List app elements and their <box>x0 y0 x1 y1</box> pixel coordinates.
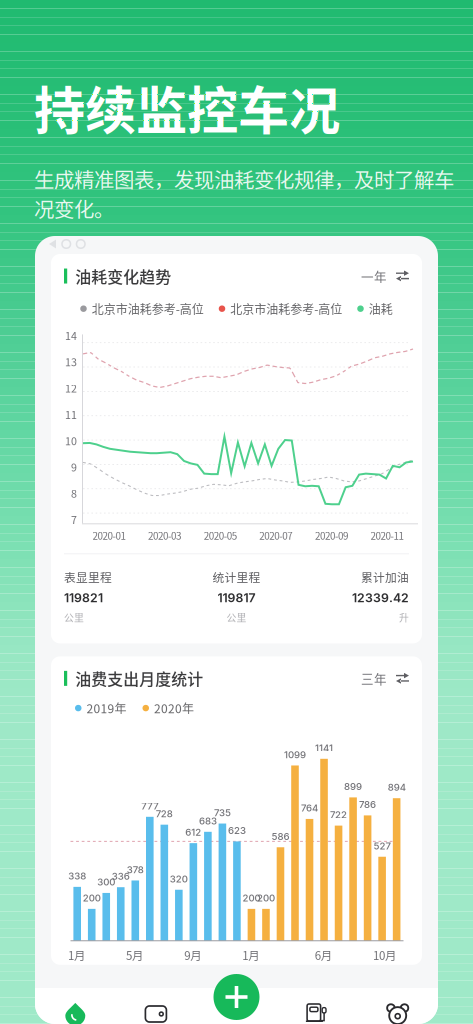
button[interactable]: 油耗 <box>35 988 116 1024</box>
staticText: 表显里程 <box>64 568 112 585</box>
staticText: 899 <box>344 781 362 792</box>
staticText: 9月 <box>184 947 201 963</box>
staticText: 764 <box>301 802 318 814</box>
staticText: 2020-09 <box>315 528 348 543</box>
staticText: 10月 <box>373 947 396 963</box>
staticText: 8 <box>71 485 77 501</box>
staticText: 14 <box>65 328 77 343</box>
staticText: 12339.42 <box>352 590 409 605</box>
button[interactable]: 三年 <box>361 669 409 687</box>
staticText: 2020-07 <box>259 528 292 543</box>
staticText: 119817 <box>217 590 255 605</box>
staticText: 12 <box>65 380 77 396</box>
staticText: 2020-03 <box>148 528 181 543</box>
staticText: 119821 <box>64 590 103 605</box>
staticText: 北京市油耗参考-高位 <box>92 300 204 317</box>
button[interactable]: 我的 <box>357 988 438 1024</box>
staticText: 1141 <box>315 742 333 754</box>
staticText: 13 <box>65 354 77 369</box>
staticText: 200 <box>242 892 260 904</box>
staticText: 5月 <box>126 947 143 963</box>
staticText: 786 <box>359 799 376 810</box>
staticText: 一年 <box>361 267 387 285</box>
staticText: 6月 <box>315 947 332 963</box>
staticText: 油耗 <box>369 300 393 317</box>
staticText: 200 <box>257 892 275 904</box>
staticText: 统计里程 <box>212 568 260 585</box>
staticText: 油费支出月度统计 <box>75 667 203 690</box>
staticText: 持续监控车况 <box>34 70 340 144</box>
staticText: 735 <box>214 807 231 818</box>
staticText: 7 <box>71 512 77 527</box>
staticText: 728 <box>156 808 173 820</box>
staticText: 10 <box>65 433 77 448</box>
staticText: 公里 <box>226 610 246 624</box>
staticText: 336 <box>112 871 130 882</box>
staticText: 2020-11 <box>370 528 403 543</box>
button[interactable]: 添加 <box>213 974 259 1020</box>
staticText: 升 <box>399 610 409 624</box>
staticText: 生成精准图表，发现油耗变化规律，及时了解车 况变化。 <box>34 164 454 223</box>
staticText: 2019年 <box>86 699 126 717</box>
staticText: 612 <box>185 826 201 838</box>
staticText: 9 <box>71 459 77 474</box>
staticText: 1099 <box>284 749 306 760</box>
staticText: 338 <box>68 870 86 882</box>
staticText: 722 <box>330 809 347 821</box>
staticText: 586 <box>271 831 289 842</box>
staticText: 1月 <box>242 947 259 963</box>
staticText: 320 <box>170 873 188 885</box>
staticText: 油耗变化趋势 <box>75 264 171 287</box>
staticText: 683 <box>199 815 217 827</box>
button[interactable]: 加油 <box>277 988 357 1024</box>
staticText: 公里 <box>64 610 84 624</box>
staticText: 894 <box>388 782 406 793</box>
staticText: 300 <box>97 876 115 888</box>
button[interactable]: 一年 <box>361 267 409 285</box>
staticText: 三年 <box>361 669 387 687</box>
staticText: 623 <box>228 825 246 836</box>
staticText: 1月 <box>68 947 85 963</box>
staticText: 527 <box>374 840 391 852</box>
button[interactable]: 账本 <box>116 988 196 1024</box>
staticText: 11 <box>65 406 77 422</box>
staticText: 378 <box>127 864 144 875</box>
staticText: 2020年 <box>154 699 194 717</box>
staticText: 2020-05 <box>204 528 237 543</box>
staticText: 200 <box>83 892 101 904</box>
staticText: 北京市油耗参考-高位 <box>230 300 342 317</box>
staticText: 累计加油 <box>361 568 409 585</box>
staticText: 2020-01 <box>92 528 125 543</box>
staticText: 777 <box>141 800 158 812</box>
